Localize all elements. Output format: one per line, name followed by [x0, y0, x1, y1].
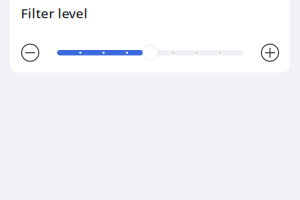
button[interactable]: Decrease filter level [16, 39, 44, 67]
button[interactable]: Filter level slider [57, 43, 243, 63]
button[interactable]: Increase filter level [256, 39, 284, 67]
staticText: Filter level [21, 4, 88, 22]
